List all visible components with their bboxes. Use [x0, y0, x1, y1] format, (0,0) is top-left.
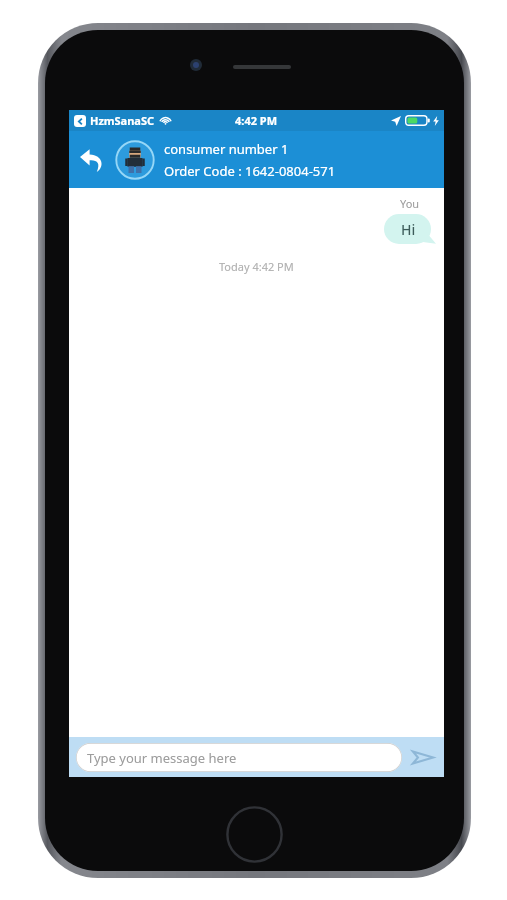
staticText: Order Code : 1642-0804-571	[164, 162, 336, 180]
staticText: consumer number 1	[164, 140, 289, 158]
staticText: 4:42 PM	[235, 113, 278, 128]
staticText: Today 4:42 PM	[219, 259, 294, 274]
button[interactable]: Back	[69, 137, 115, 183]
staticText: Type your message here	[87, 749, 237, 767]
staticText: Hi	[401, 220, 416, 239]
staticText: HzmSanaSC	[90, 113, 155, 128]
button[interactable]: Type your message here	[76, 743, 402, 772]
button[interactable]: Hi	[384, 214, 436, 244]
staticText: You	[400, 196, 420, 211]
button[interactable]: Back to app	[74, 115, 86, 127]
button[interactable]: Send	[402, 737, 444, 777]
